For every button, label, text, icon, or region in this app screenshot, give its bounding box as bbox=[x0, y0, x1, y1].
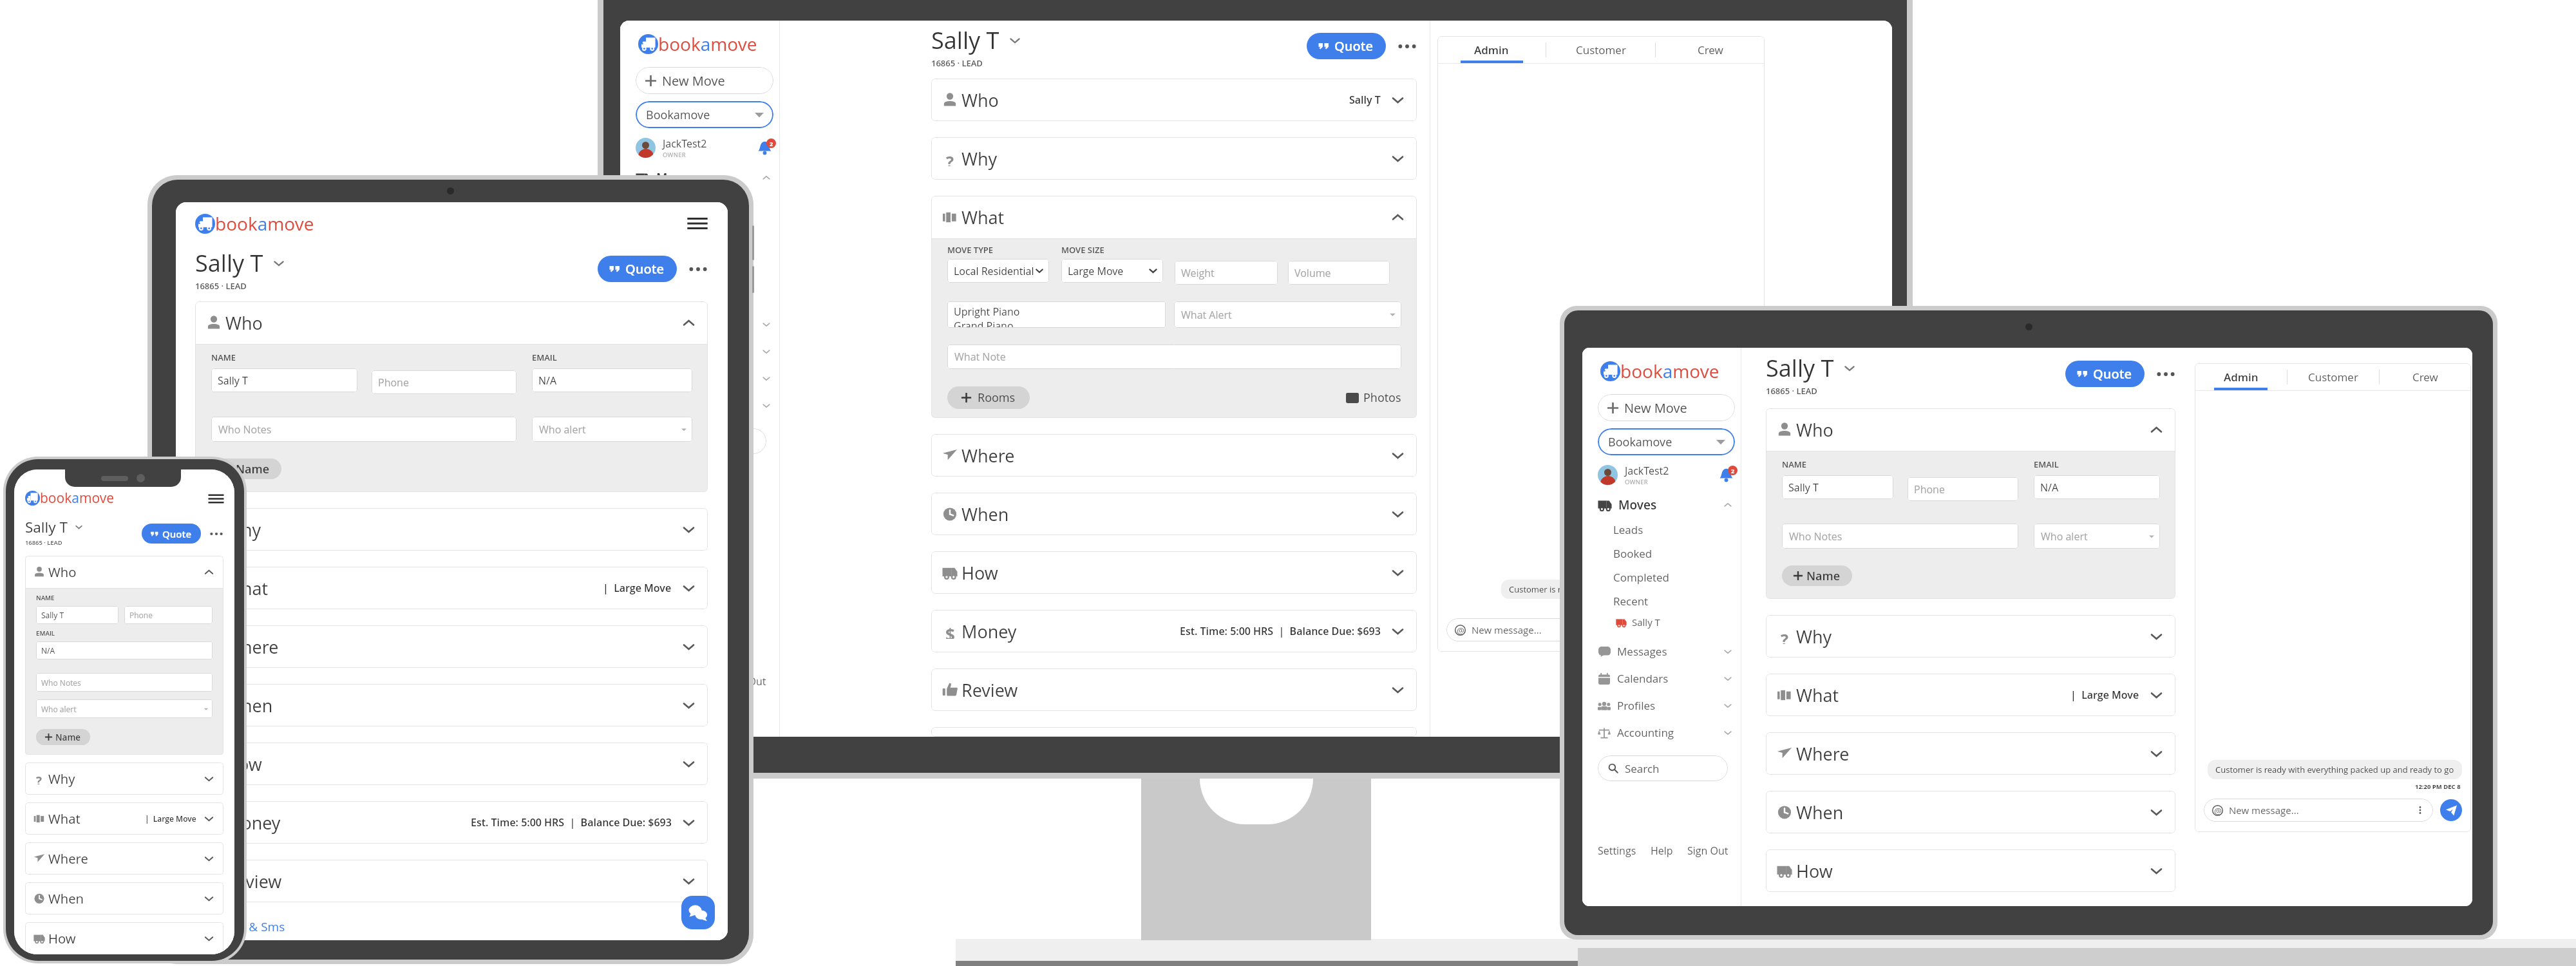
button[interactable]: Bookamove bbox=[1598, 428, 1735, 455]
button[interactable]: Name bbox=[211, 459, 281, 479]
button[interactable]: More options bbox=[209, 527, 223, 540]
button[interactable]: $ bbox=[931, 610, 1417, 652]
staticText: Sally T bbox=[25, 517, 68, 537]
button[interactable]: Chat bbox=[681, 896, 715, 929]
button[interactable]: Settings bbox=[636, 674, 674, 688]
button[interactable]: Photos bbox=[1346, 390, 1401, 406]
button[interactable]: Quote bbox=[1307, 33, 1386, 59]
button[interactable]: Settings bbox=[1598, 844, 1636, 858]
button[interactable]: Messages bbox=[1598, 644, 1733, 659]
button[interactable]: Who bbox=[25, 556, 223, 588]
button[interactable]: Sign Out bbox=[1687, 844, 1728, 858]
button[interactable]: Admin bbox=[1437, 36, 1546, 63]
button[interactable]: Bookamove bbox=[636, 101, 773, 128]
button[interactable]: New Move bbox=[1598, 394, 1735, 421]
button[interactable]: Calendars bbox=[636, 344, 772, 359]
button[interactable]: Quote bbox=[598, 256, 677, 282]
button[interactable]: Where bbox=[195, 625, 708, 668]
button[interactable]: Review bbox=[931, 668, 1417, 711]
staticText: Customer is ready with everything packed… bbox=[1509, 583, 1748, 595]
button[interactable]: Crew bbox=[1656, 36, 1765, 63]
button[interactable]: Where bbox=[1766, 732, 2175, 775]
staticText: Est. Time: 5:00 HRS | Balance Due: $693 bbox=[471, 815, 672, 829]
button[interactable]: Accounting bbox=[1598, 725, 1733, 740]
button[interactable]: Moves bbox=[1598, 497, 1733, 513]
button[interactable]: ? bbox=[25, 762, 223, 795]
button[interactable]: Quote bbox=[2065, 361, 2145, 387]
button[interactable]: Where bbox=[931, 434, 1417, 477]
button[interactable]: Where bbox=[25, 842, 223, 875]
button[interactable]: @ bbox=[1446, 618, 1727, 641]
button[interactable]: Completed bbox=[1613, 570, 1741, 585]
button[interactable]: Sign Out bbox=[725, 674, 766, 688]
button[interactable]: Leads bbox=[1613, 522, 1741, 537]
button[interactable]: Send bbox=[2440, 799, 2462, 821]
button[interactable]: More options bbox=[2156, 366, 2175, 383]
button[interactable]: Menu bbox=[687, 213, 708, 234]
staticText: MOVE SIZE bbox=[1061, 244, 1104, 256]
button[interactable]: ? bbox=[931, 137, 1417, 180]
staticText: JackTest2 bbox=[663, 137, 707, 151]
button[interactable]: Customer bbox=[2287, 363, 2379, 390]
button[interactable]: How bbox=[25, 922, 223, 954]
button[interactable]: Crew bbox=[2380, 363, 2471, 390]
button[interactable]: Profiles bbox=[1598, 698, 1733, 713]
button[interactable]: Menu bbox=[208, 491, 223, 506]
button[interactable]: Moves bbox=[636, 169, 772, 186]
button[interactable]: Booked bbox=[651, 219, 779, 234]
button[interactable]: Accounting bbox=[636, 398, 772, 413]
button[interactable]: How bbox=[1766, 849, 2175, 892]
button[interactable]: Name bbox=[1782, 565, 1852, 586]
button[interactable]: Leads bbox=[651, 195, 779, 210]
button[interactable]: When bbox=[931, 493, 1417, 535]
button[interactable]: Recent bbox=[1613, 594, 1741, 609]
button[interactable]: Completed bbox=[651, 243, 779, 258]
button[interactable]: More options bbox=[688, 261, 708, 278]
button[interactable]: More options bbox=[1397, 38, 1417, 55]
button[interactable]: When bbox=[25, 882, 223, 914]
button[interactable]: Help bbox=[688, 674, 711, 688]
button[interactable]: Booked bbox=[1613, 546, 1741, 561]
staticText: OWNER bbox=[663, 151, 686, 159]
button[interactable]: Send bbox=[1734, 619, 1756, 641]
button[interactable]: Quote bbox=[142, 524, 201, 544]
button[interactable]: Who bbox=[931, 79, 1417, 121]
button[interactable]: Search bbox=[636, 428, 766, 454]
staticText: Who bbox=[961, 88, 999, 112]
button[interactable]: Profiles bbox=[636, 371, 772, 386]
button[interactable]: New Move bbox=[636, 67, 773, 94]
button[interactable]: Customer bbox=[1546, 36, 1655, 63]
button[interactable]: @ bbox=[2204, 799, 2433, 822]
staticText: Who alert bbox=[2041, 529, 2088, 544]
staticText: MOVE TYPE bbox=[947, 244, 994, 256]
button[interactable]: What bbox=[931, 196, 1417, 238]
staticText: @ bbox=[1457, 625, 1464, 636]
button[interactable]: Admin bbox=[2195, 363, 2287, 390]
button[interactable]: Messages bbox=[636, 317, 772, 332]
staticText: 2 bbox=[1731, 467, 1735, 475]
button[interactable]: How bbox=[195, 743, 708, 785]
button[interactable]: When bbox=[195, 684, 708, 726]
button[interactable]: $ bbox=[195, 801, 708, 844]
staticText: Completed bbox=[651, 243, 708, 258]
staticText: JackTest2 bbox=[1625, 464, 1669, 478]
button[interactable]: How bbox=[931, 551, 1417, 594]
button[interactable]: Sally T bbox=[1616, 616, 1741, 629]
button[interactable]: Search bbox=[1598, 755, 1728, 781]
button[interactable]: What bbox=[195, 567, 708, 609]
button[interactable]: Help bbox=[1651, 844, 1673, 858]
button[interactable]: Review bbox=[195, 860, 708, 902]
button[interactable]: Sally T bbox=[654, 289, 779, 301]
button[interactable]: Calendars bbox=[1598, 671, 1733, 686]
button[interactable]: ? bbox=[1766, 615, 2175, 658]
button[interactable]: Who bbox=[195, 301, 708, 344]
button[interactable]: Recent bbox=[651, 267, 779, 281]
button[interactable]: When bbox=[1766, 791, 2175, 833]
button[interactable]: Who bbox=[1766, 408, 2175, 451]
button[interactable]: Name bbox=[36, 729, 90, 745]
button[interactable]: What bbox=[1766, 674, 2175, 716]
button[interactable]: Rooms bbox=[947, 386, 1030, 409]
button[interactable]: What bbox=[25, 802, 223, 835]
button[interactable]: ? bbox=[195, 508, 708, 551]
